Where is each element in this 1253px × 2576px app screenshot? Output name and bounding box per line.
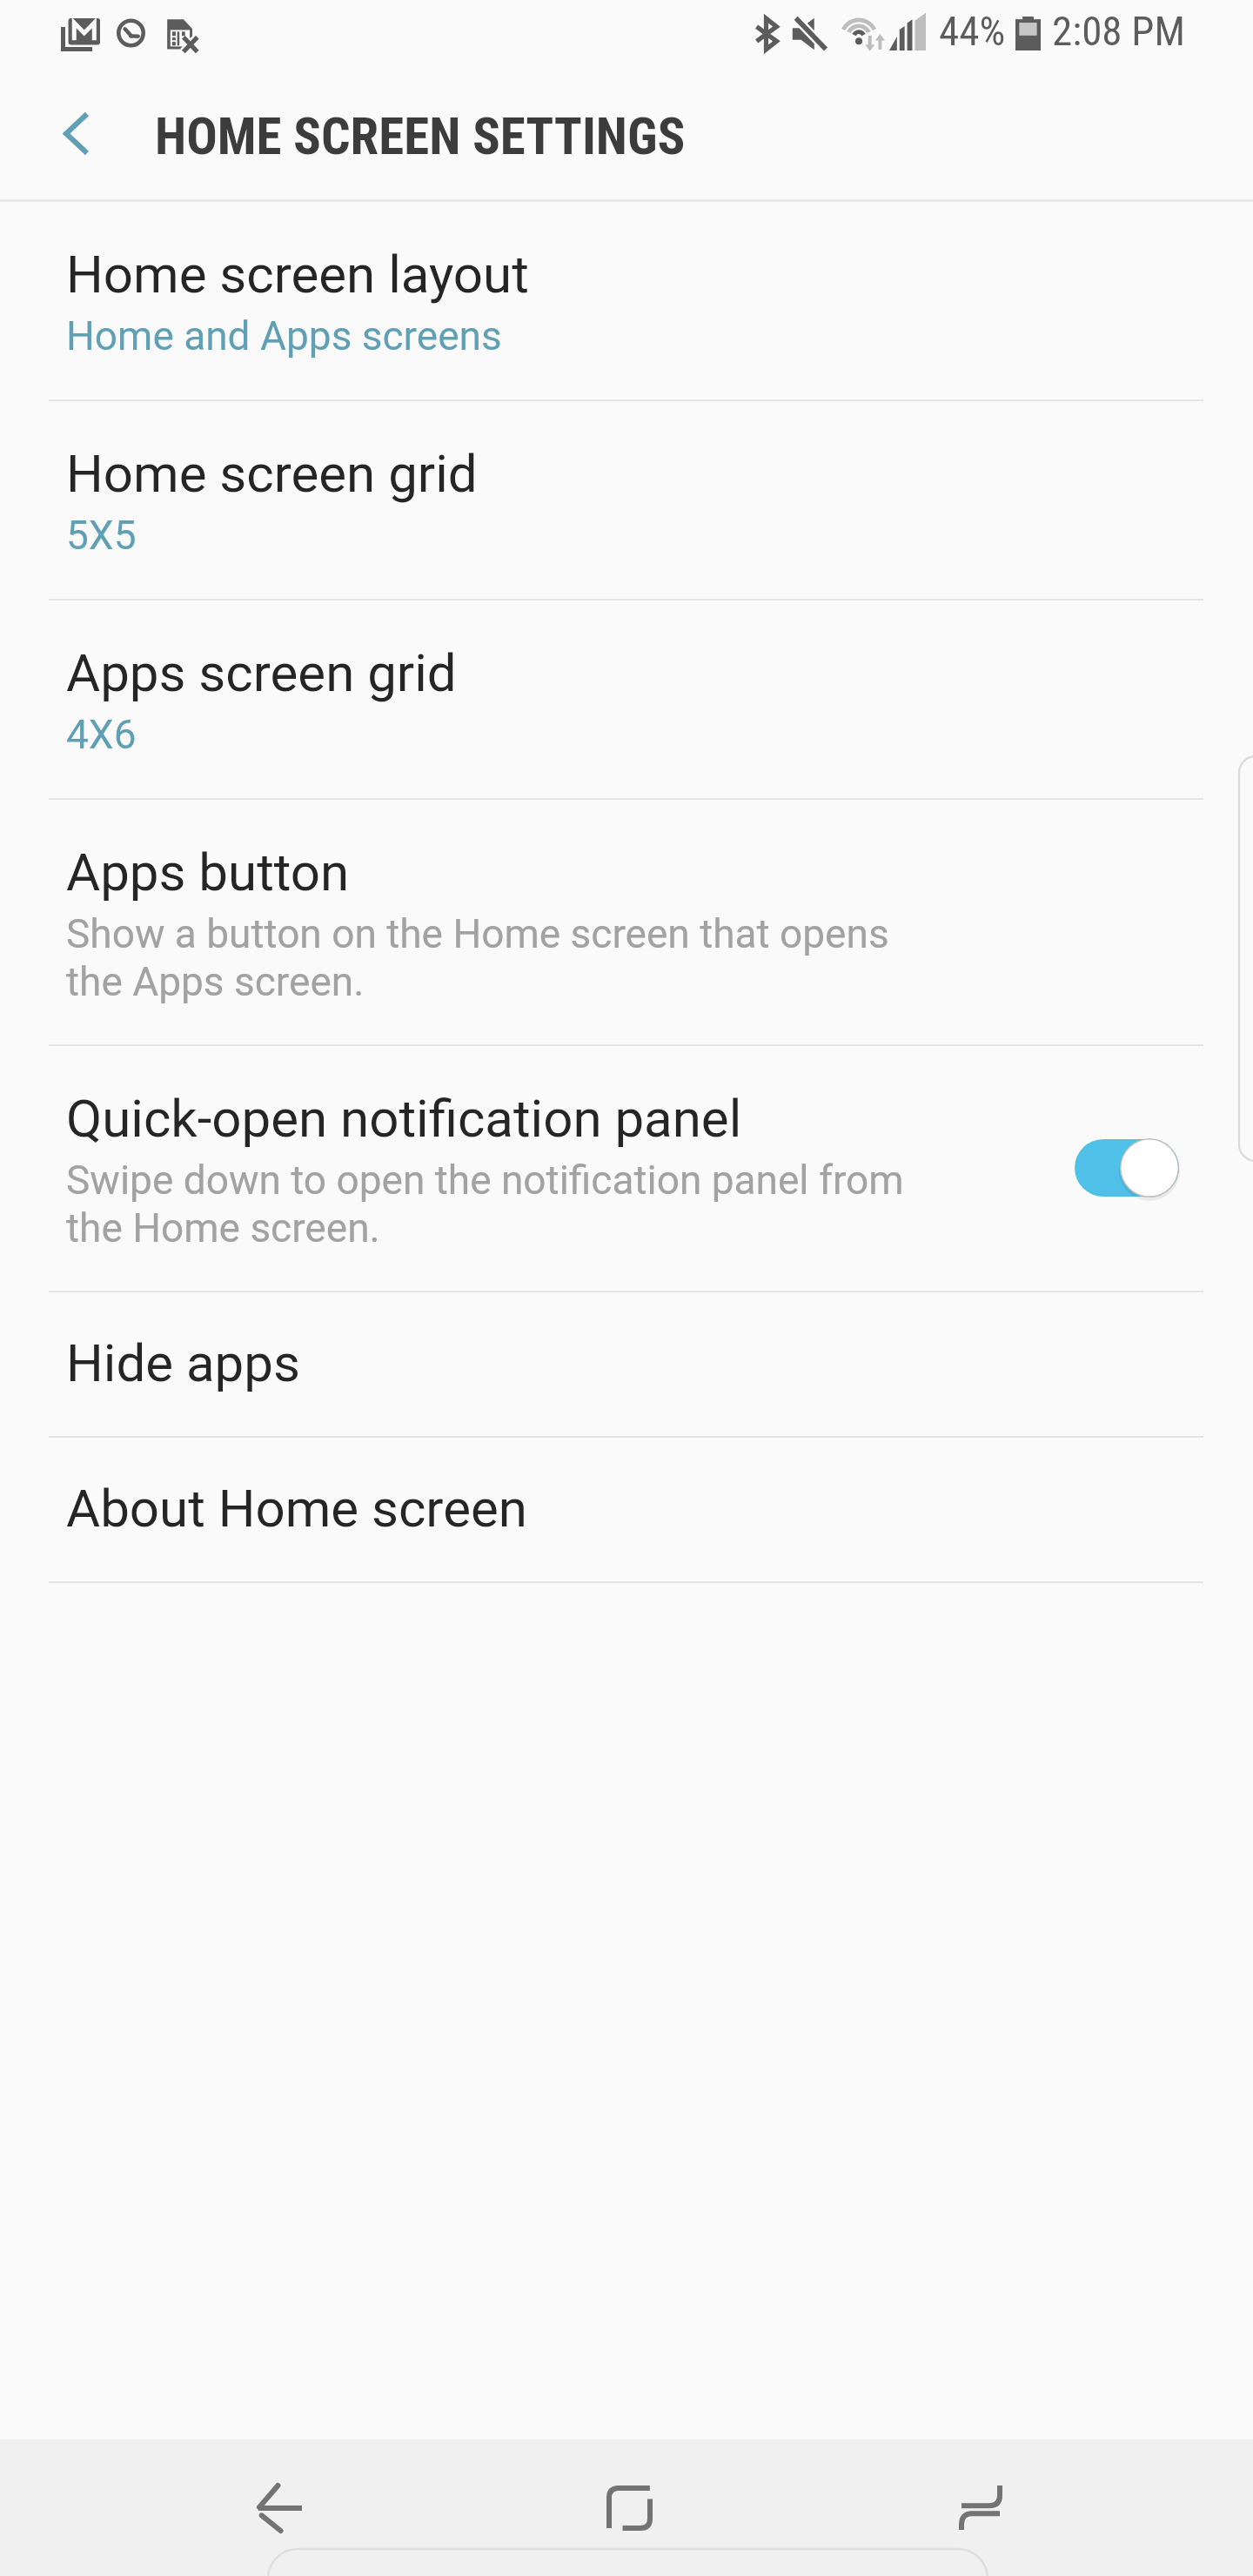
staticText: 4X6 (66, 711, 137, 758)
staticText: 5X5 (66, 512, 137, 559)
staticText: 44% (939, 7, 1006, 55)
staticText: Home screen layout (66, 244, 529, 305)
button[interactable]: Apps button (0, 800, 1253, 1043)
button[interactable]: About Home screen (0, 1438, 1253, 1580)
staticText: Swipe down to open the notification pane… (66, 1157, 904, 1252)
button[interactable]: Home screen grid (0, 401, 1253, 598)
button[interactable]: Quick-open notification panel (0, 1046, 1253, 1290)
staticText: 2:08 PM (1052, 7, 1185, 55)
staticText: Quick-open notification panel (66, 1088, 742, 1149)
staticText: Apps screen grid (66, 642, 457, 703)
button[interactable]: Home screen layout (0, 202, 1253, 399)
button[interactable]: Home (559, 2439, 699, 2576)
button[interactable]: Back (210, 2439, 349, 2576)
staticText: Show a button on the Home screen that op… (66, 910, 889, 1006)
button[interactable]: Hide apps (0, 1292, 1253, 1435)
button[interactable]: Apps screen grid (0, 600, 1253, 797)
button[interactable]: Navigate up (19, 76, 134, 191)
staticText: Apps button (66, 842, 350, 902)
button[interactable]: Quick-open notification panel toggle (1075, 1120, 1205, 1216)
staticText: HOME SCREEN SETTINGS (155, 106, 686, 166)
staticText: Home and Apps screens (66, 312, 502, 359)
button[interactable]: Recent apps (911, 2439, 1050, 2576)
staticText: Hide apps (66, 1332, 300, 1393)
staticText: About Home screen (66, 1478, 527, 1539)
staticText: Home screen grid (66, 443, 478, 504)
